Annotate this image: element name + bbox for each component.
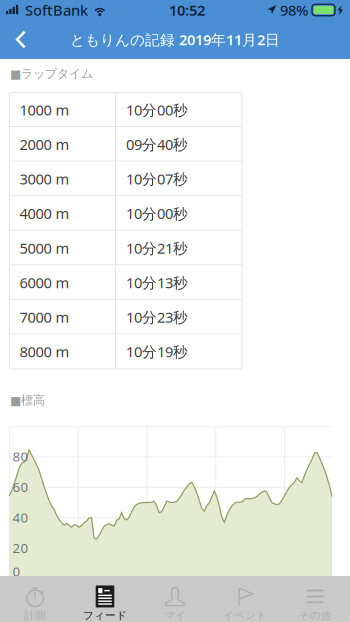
staticText: 10分00秒	[126, 204, 188, 223]
staticText: 40	[12, 508, 28, 526]
staticText: 10分23秒	[126, 307, 188, 327]
staticText: 7000 m	[19, 307, 69, 327]
staticText: 1000 m	[19, 100, 69, 119]
staticText: イベント	[223, 609, 267, 622]
staticText: 80	[12, 447, 28, 465]
staticText: 5000 m	[19, 238, 69, 258]
staticText: 10分07秒	[126, 169, 188, 189]
staticText: 3000 m	[19, 169, 69, 189]
staticText: マイ	[164, 609, 186, 622]
button[interactable]: マイ	[140, 576, 210, 622]
staticText: 4000 m	[19, 204, 69, 223]
staticText: 10分00秒	[126, 100, 188, 119]
button[interactable]: イベント	[210, 576, 280, 622]
staticText: 10分13秒	[126, 273, 188, 292]
staticText: 09分40秒	[126, 135, 188, 154]
button[interactable]: その他	[280, 576, 350, 622]
button[interactable]: 計測	[0, 576, 70, 622]
staticText: 60	[12, 478, 28, 496]
staticText: ■ラップタイム	[10, 66, 93, 81]
staticText: 6000 m	[19, 273, 69, 292]
staticText: 2000 m	[19, 135, 69, 154]
staticText: ともりんの記録 2019年11月2日	[70, 30, 280, 49]
staticText: 計測	[24, 609, 46, 622]
staticText: SoftBank	[25, 0, 88, 20]
staticText: 20	[12, 539, 28, 557]
staticText: 10:52	[169, 0, 205, 20]
staticText: 0	[12, 562, 20, 580]
staticText: 98%	[280, 0, 308, 20]
staticText: 10分21秒	[126, 238, 188, 258]
staticText: ■標高	[10, 393, 45, 408]
staticText: フィード	[83, 609, 127, 622]
button[interactable]: フィード	[70, 576, 140, 622]
staticText: 10分19秒	[126, 342, 188, 361]
staticText: 8000 m	[19, 342, 69, 361]
button[interactable]: Back	[0, 20, 42, 59]
staticText: その他	[298, 609, 331, 622]
